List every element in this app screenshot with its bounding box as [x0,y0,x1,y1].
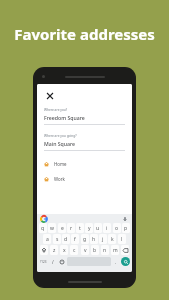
staticText: a [46,236,49,243]
button[interactable]: k [108,234,116,244]
staticText: o [115,225,119,232]
staticText: f [74,236,76,243]
button[interactable]: z [50,245,58,255]
staticText: j [102,236,104,243]
button[interactable]: v [81,245,89,255]
staticText: Where are you? [44,108,68,112]
staticText: w [50,225,54,232]
staticText: r [70,225,73,232]
staticText: Freedom Square [44,114,85,121]
button[interactable]: n [101,245,109,255]
button[interactable]: Backspace [121,245,129,255]
button[interactable]: e [58,223,66,233]
button[interactable]: x [60,245,68,255]
staticText: x [63,247,66,254]
staticText: c [73,247,76,254]
button[interactable]: s [53,234,61,244]
button[interactable]: b [91,245,99,255]
button[interactable]: f [71,234,79,244]
staticText: u [96,225,100,232]
staticText: / [52,259,54,265]
button[interactable]: q [39,223,47,233]
button[interactable]: Home [44,161,125,167]
staticText: s [56,236,59,243]
staticText: t [79,225,81,232]
button[interactable]: a [43,234,51,244]
button[interactable]: p [122,223,130,233]
staticText: k [111,236,114,243]
staticText: l [121,236,123,243]
staticText: Main Square [44,140,76,147]
button[interactable]: . [113,257,119,266]
staticText: Work [54,176,65,182]
staticText: e [61,225,64,232]
staticText: v [84,247,87,254]
button[interactable]: g [81,234,89,244]
staticText: b [93,247,97,254]
staticText: ?123 [40,260,47,264]
button[interactable]: r [67,223,75,233]
button[interactable]: c [70,245,78,255]
button[interactable]: h [90,234,98,244]
button[interactable]: Emoji [58,257,65,266]
button[interactable]: Shift [40,245,48,255]
button[interactable]: t [76,223,84,233]
staticText: y [88,225,91,232]
staticText: Where are you going? [44,134,77,138]
staticText: g [83,236,87,243]
staticText: z [53,247,56,254]
button[interactable]: j [99,234,107,244]
button[interactable]: m [111,245,119,255]
button[interactable]: ?123 [39,257,48,266]
staticText: m [113,247,118,254]
staticText: n [103,247,107,254]
button[interactable]: d [62,234,70,244]
button[interactable]: / [50,257,56,266]
button[interactable]: Voice input [122,216,128,222]
button[interactable]: Google [41,216,47,222]
staticText: i [106,225,108,232]
button[interactable]: Work [44,176,125,182]
staticText: . [115,259,117,265]
button[interactable]: Close [44,90,55,101]
button[interactable]: y [85,223,93,233]
staticText: p [124,225,128,232]
staticText: q [41,225,45,232]
staticText: Favorite addresses [14,24,155,44]
staticText: d [64,236,68,243]
button[interactable]: w [48,223,56,233]
button[interactable]: o [113,223,121,233]
button[interactable]: Search [121,257,130,266]
button[interactable]: i [103,223,111,233]
staticText: h [92,236,96,243]
button[interactable]: u [94,223,102,233]
button[interactable]: l [118,234,126,244]
staticText: Home [54,161,67,167]
